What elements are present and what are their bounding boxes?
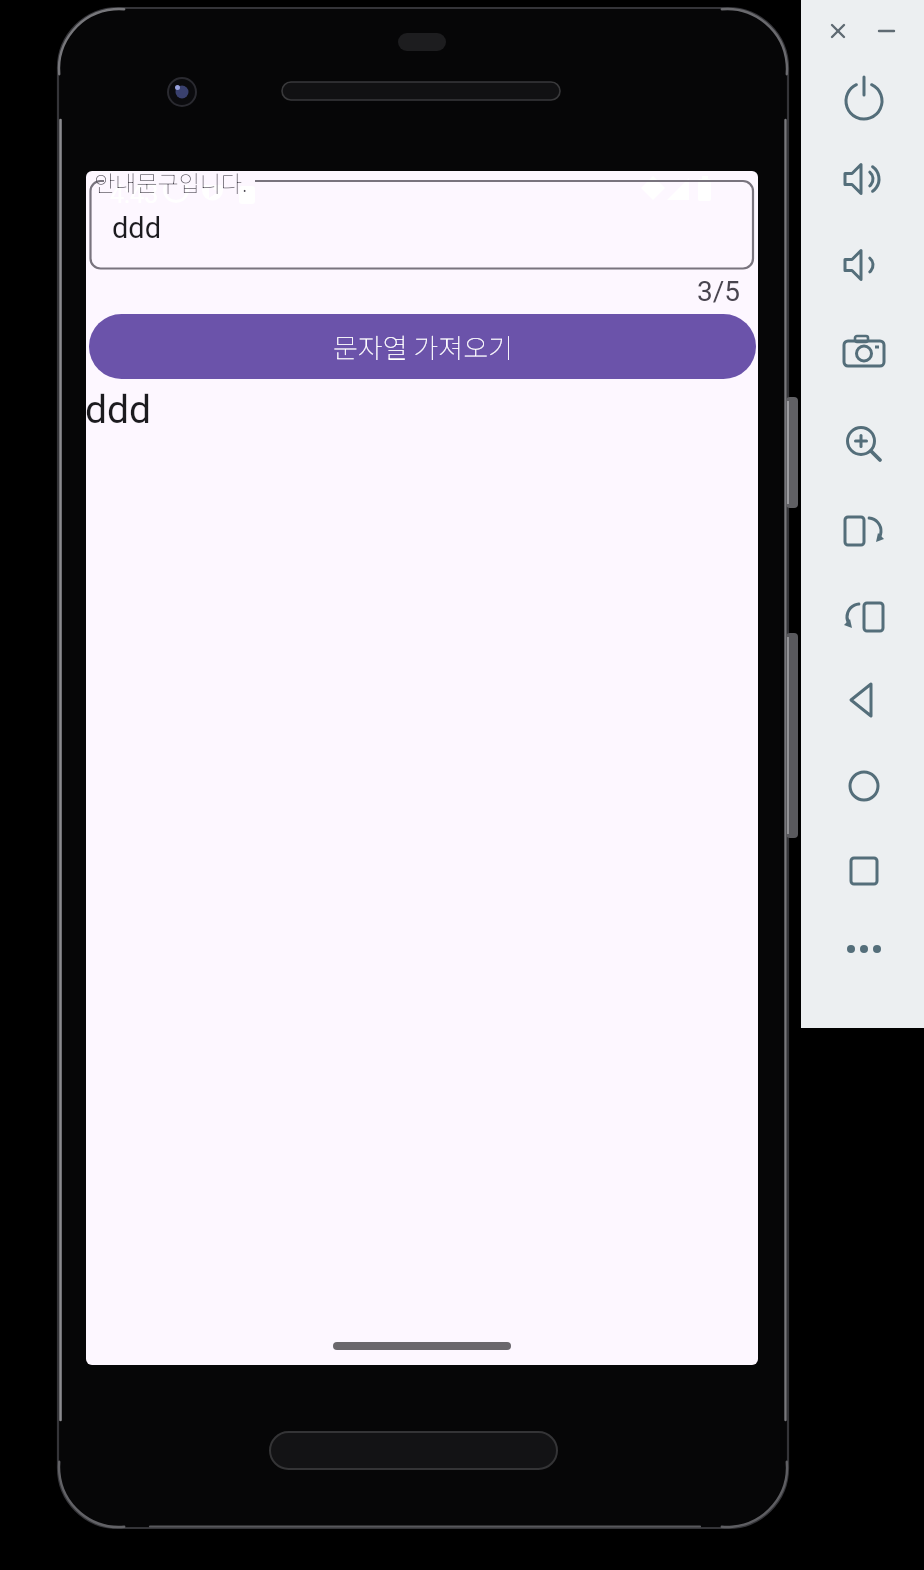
- button[interactable]: [840, 847, 888, 895]
- button[interactable]: ddd: [90, 181, 753, 269]
- staticText: 3/5: [697, 275, 741, 308]
- button[interactable]: [840, 328, 888, 376]
- staticText: 안내문구입니다.: [94, 171, 248, 198]
- button[interactable]: [840, 762, 888, 810]
- button[interactable]: [873, 17, 901, 45]
- staticText: ddd: [86, 387, 151, 433]
- button[interactable]: [840, 676, 888, 724]
- button[interactable]: [840, 241, 888, 289]
- staticText: 4:43: [110, 180, 159, 209]
- button[interactable]: [840, 74, 888, 122]
- button[interactable]: 문자열 가져오기: [89, 314, 756, 379]
- button[interactable]: [840, 925, 888, 973]
- button[interactable]: [840, 592, 888, 640]
- button[interactable]: [840, 420, 888, 468]
- staticText: 문자열 가져오기: [333, 327, 513, 366]
- button[interactable]: [840, 506, 888, 554]
- button[interactable]: [840, 155, 888, 203]
- staticText: ddd: [112, 211, 162, 245]
- button[interactable]: [824, 17, 852, 45]
